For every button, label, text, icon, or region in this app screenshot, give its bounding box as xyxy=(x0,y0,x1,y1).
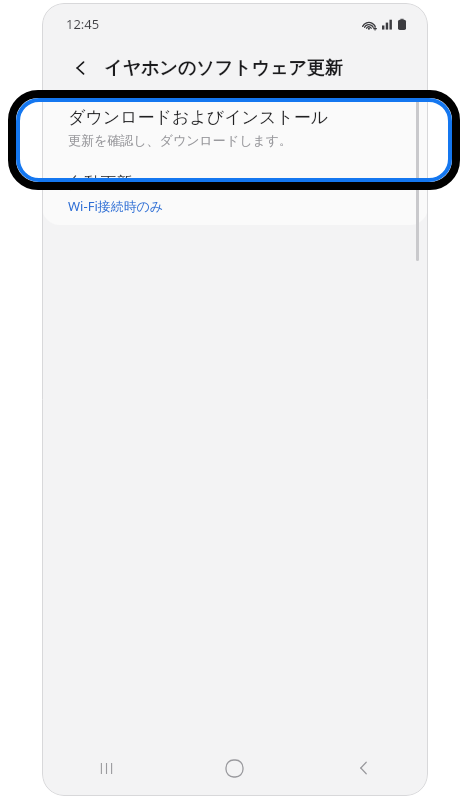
button[interactable]: 自動更新 xyxy=(42,163,428,225)
button[interactable]: 最近のアプリ xyxy=(42,740,170,796)
staticText: イヤホンのソフトウェア更新 xyxy=(104,57,343,80)
button[interactable]: ホーム xyxy=(170,740,299,796)
button[interactable]: 戻る xyxy=(299,740,428,796)
button[interactable] xyxy=(8,90,460,190)
staticText: 更新を確認し、ダウンロードします。 xyxy=(68,132,293,148)
staticText: 12:45 xyxy=(66,15,100,33)
button[interactable]: 戻る xyxy=(68,55,94,81)
staticText: Wi-Fi接続時のみ xyxy=(68,197,164,215)
button[interactable]: ダウンロードおよびインストール xyxy=(42,91,428,163)
staticText: 自動更新 xyxy=(68,173,132,193)
staticText: ダウンロードおよびインストール xyxy=(68,107,329,128)
